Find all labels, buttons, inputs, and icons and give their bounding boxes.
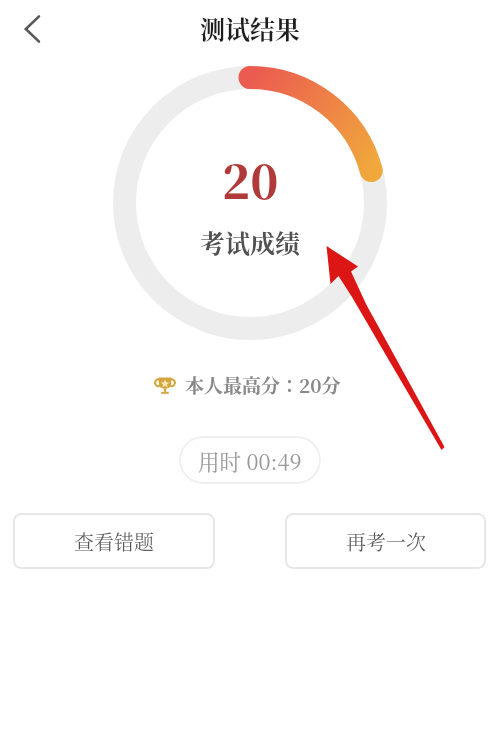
button[interactable]: 查看错题 — [13, 513, 215, 569]
staticText: 考试成绩 — [200, 224, 301, 260]
button[interactable]: 再考一次 — [285, 513, 486, 569]
staticText: 测试结果 — [200, 10, 301, 46]
staticText: 本人最高分：20分 — [185, 371, 341, 398]
button[interactable]: Back — [7, 3, 59, 55]
button[interactable]: 用时 00:49 — [179, 436, 321, 484]
staticText: 用时 00:49 — [198, 445, 302, 476]
staticText: 20 — [222, 146, 279, 212]
staticText: 再考一次 — [346, 527, 426, 556]
staticText: 查看错题 — [74, 527, 154, 556]
